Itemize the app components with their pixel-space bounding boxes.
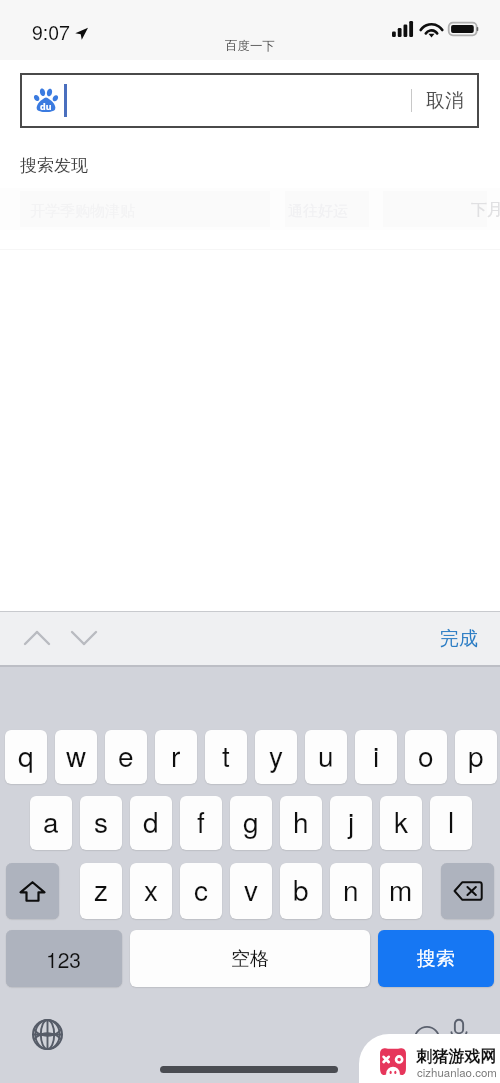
button[interactable]: n	[330, 863, 372, 919]
button[interactable]: z	[80, 863, 122, 919]
button[interactable]: Emoji	[414, 1026, 440, 1052]
staticText: 下月	[471, 200, 500, 220]
staticText: y	[269, 735, 284, 775]
staticText: l	[448, 801, 455, 841]
button[interactable]: s	[80, 796, 122, 850]
staticText: 搜索	[417, 947, 455, 971]
button[interactable]: g	[230, 796, 272, 850]
staticText: d	[143, 801, 159, 841]
button[interactable]: 完成	[427, 621, 490, 657]
staticText: o	[418, 735, 434, 775]
staticText: v	[244, 869, 259, 909]
button[interactable]: Backspace	[441, 863, 494, 919]
button[interactable]: 搜索	[378, 930, 494, 987]
button[interactable]: w	[55, 730, 97, 784]
staticText: i	[373, 735, 380, 775]
staticText: 刺猪游戏网	[416, 1047, 496, 1067]
button[interactable]: 123	[6, 930, 122, 987]
button[interactable]: f	[180, 796, 222, 850]
staticText: cizhuanlao.com	[417, 1064, 497, 1080]
staticText: 9:07	[32, 18, 70, 46]
staticText: r	[171, 735, 181, 775]
staticText: t	[222, 735, 230, 775]
button[interactable]: m	[380, 863, 422, 919]
button[interactable]: Shift	[6, 863, 59, 919]
staticText: x	[144, 869, 159, 909]
button[interactable]: h	[280, 796, 322, 850]
staticText: 搜索发现	[20, 155, 88, 176]
staticText: u	[318, 735, 334, 775]
button[interactable]: j	[330, 796, 372, 850]
staticText: 通往好运	[288, 202, 348, 221]
button[interactable]: 空格	[130, 930, 370, 987]
staticText: f	[197, 801, 205, 841]
staticText: h	[293, 801, 309, 841]
staticText: c	[194, 869, 209, 909]
staticText: m	[389, 869, 413, 909]
staticText: 取消	[426, 89, 464, 113]
staticText: z	[94, 869, 109, 909]
staticText: a	[43, 801, 59, 841]
button[interactable]: x	[130, 863, 172, 919]
button[interactable]: d	[130, 796, 172, 850]
button[interactable]: i	[355, 730, 397, 784]
button[interactable]: e	[105, 730, 147, 784]
button[interactable]: r	[155, 730, 197, 784]
button[interactable]: p	[455, 730, 497, 784]
staticText: s	[94, 801, 109, 841]
staticText: w	[66, 735, 87, 775]
staticText: e	[118, 735, 134, 775]
button[interactable]: l	[430, 796, 472, 850]
staticText: 123	[46, 944, 82, 974]
staticText: 完成	[440, 627, 478, 651]
staticText: q	[18, 735, 34, 775]
staticText: du	[40, 100, 52, 112]
button[interactable]: q	[5, 730, 47, 784]
staticText: j	[348, 801, 355, 841]
staticText: b	[293, 869, 309, 909]
staticText: k	[394, 801, 409, 841]
button[interactable]: u	[305, 730, 347, 784]
button[interactable]: c	[180, 863, 222, 919]
button[interactable]: k	[380, 796, 422, 850]
button[interactable]: Next	[64, 620, 104, 656]
staticText: g	[243, 801, 259, 841]
button[interactable]: b	[280, 863, 322, 919]
button[interactable]: Previous	[17, 620, 57, 656]
staticText: n	[343, 869, 359, 909]
button[interactable]: 取消	[412, 79, 479, 123]
button[interactable]: y	[255, 730, 297, 784]
button[interactable]: Switch keyboard	[30, 1017, 65, 1052]
button[interactable]: Voice input	[446, 1018, 472, 1044]
button[interactable]: a	[30, 796, 72, 850]
staticText: 空格	[231, 947, 269, 971]
button[interactable]: t	[205, 730, 247, 784]
button[interactable]: v	[230, 863, 272, 919]
button[interactable]: du	[20, 73, 479, 128]
staticText: p	[468, 735, 484, 775]
button[interactable]: o	[405, 730, 447, 784]
staticText: 百度一下	[225, 38, 275, 54]
